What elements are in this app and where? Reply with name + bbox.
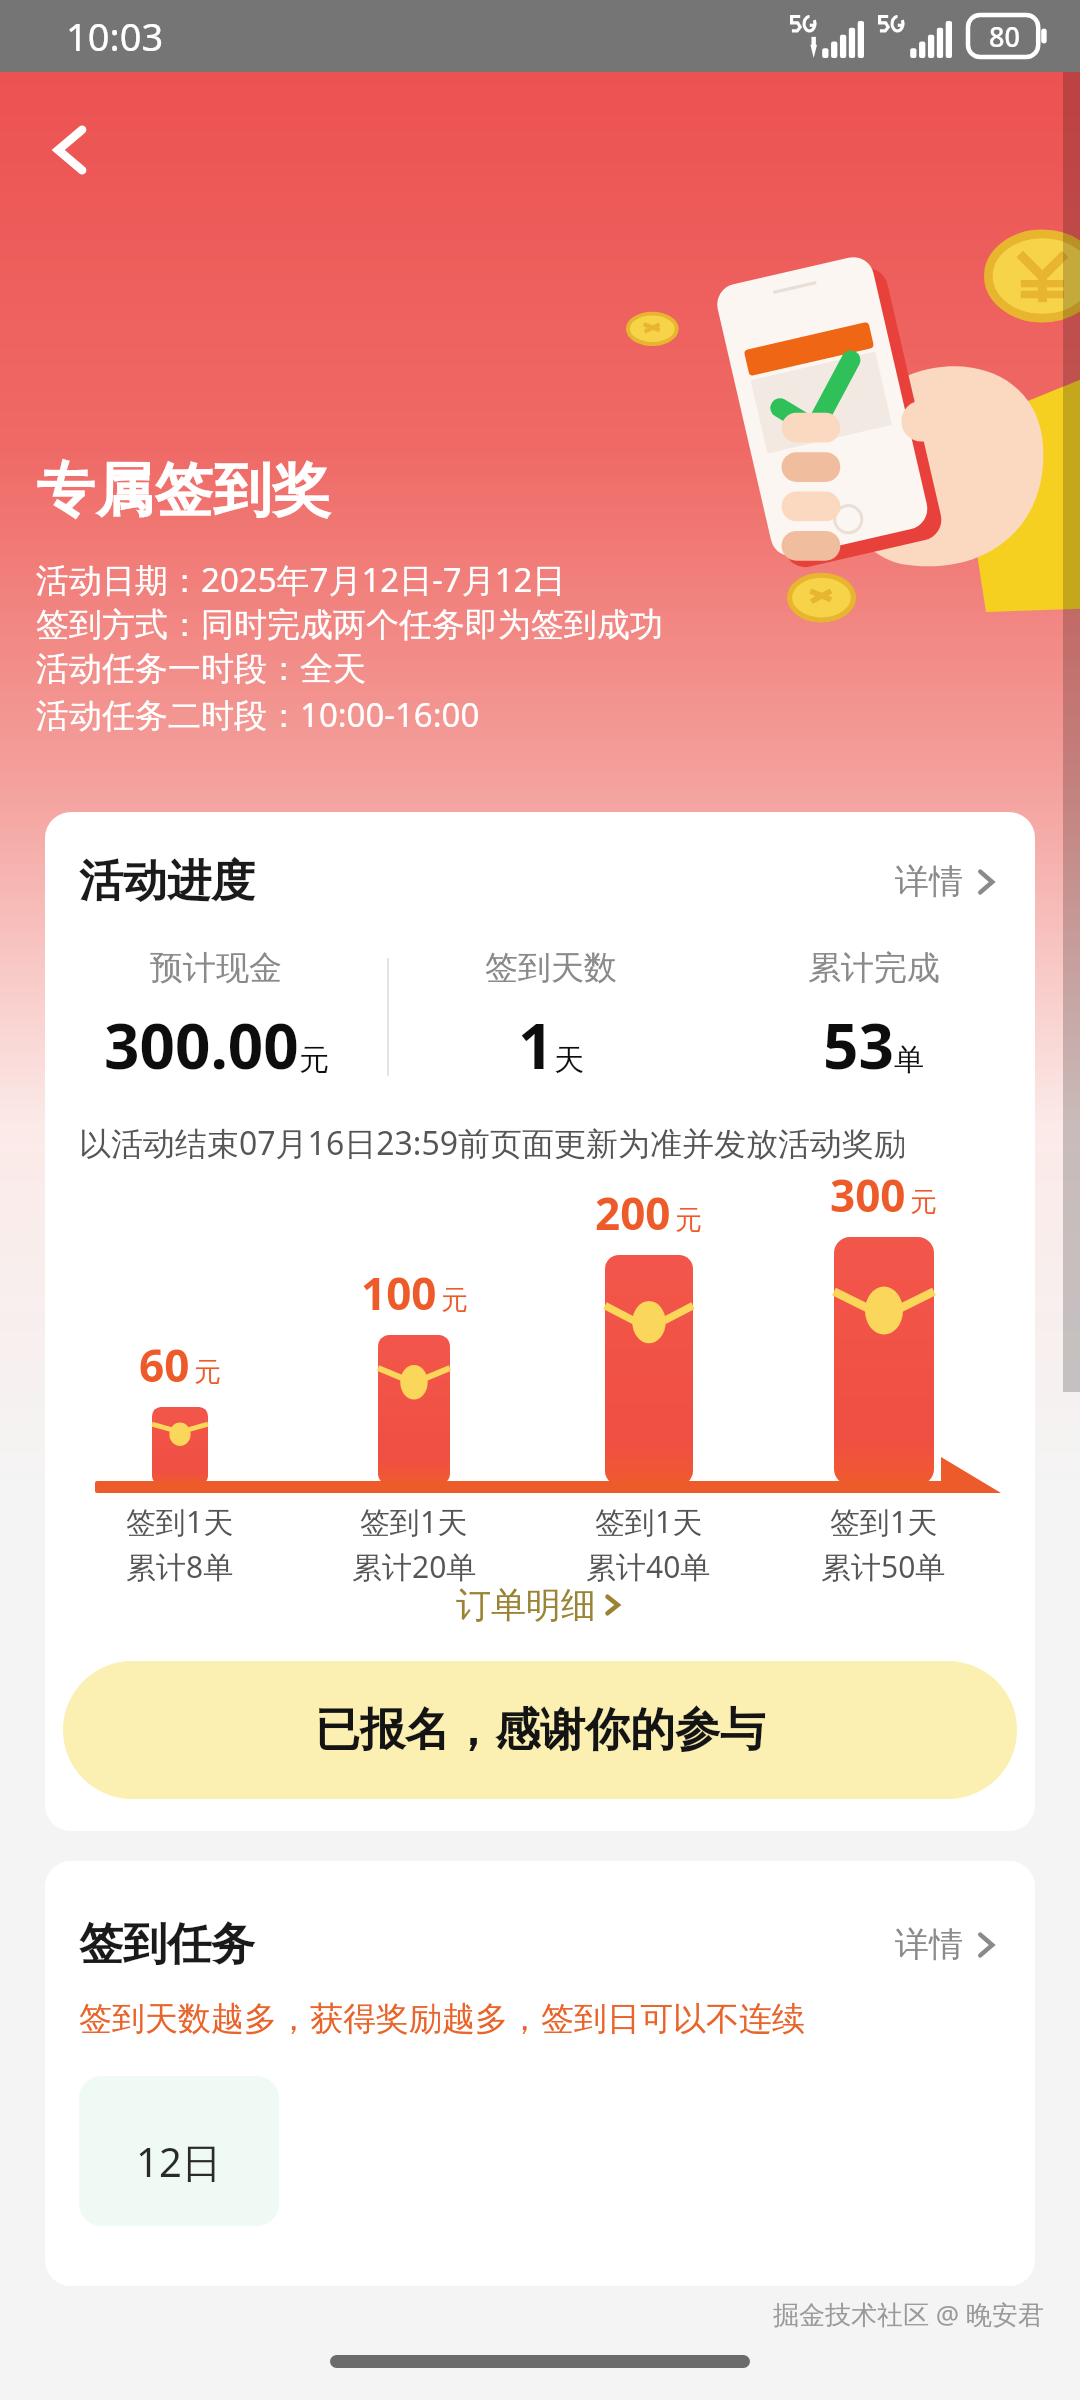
staticText: 签到1天	[830, 1501, 938, 1542]
staticText: 100	[361, 1263, 437, 1323]
staticText: 53	[823, 1003, 894, 1087]
staticText: 掘金技术社区 @ 晚安君	[773, 2296, 1044, 2332]
staticText: 元	[675, 1203, 702, 1237]
staticText: 60	[139, 1335, 190, 1395]
staticText: 元	[299, 1041, 329, 1079]
staticText: 活动任务二时段：10:00-16:00	[36, 692, 480, 737]
staticText: 单	[894, 1041, 924, 1079]
staticText: 300	[830, 1165, 906, 1225]
staticText: 活动日期：2025年7月12日-7月12日	[36, 557, 566, 602]
staticText: 签到1天	[595, 1501, 703, 1542]
staticText: 累计完成	[808, 947, 940, 989]
staticText: 1	[518, 1003, 554, 1087]
staticText: 累计50单	[821, 1546, 946, 1587]
button[interactable]: 详情	[889, 854, 1005, 909]
button[interactable]: 订单明细	[45, 1565, 1035, 1645]
staticText: 元	[441, 1283, 468, 1317]
staticText: 签到天数越多，获得奖励越多，签到日可以不连续	[79, 1998, 805, 2040]
staticText: 200	[595, 1183, 671, 1243]
staticText: 签到1天	[126, 1501, 234, 1542]
staticText: 以活动结束07月16日23:59前页面更新为准并发放活动奖励	[79, 1121, 907, 1165]
button[interactable]: 详情	[889, 1917, 1005, 1972]
button[interactable]: Back	[24, 102, 120, 198]
button[interactable]: 已报名，感谢你的参与	[63, 1661, 1017, 1799]
staticText: 累计40单	[586, 1546, 711, 1587]
staticText: 活动进度	[79, 854, 255, 909]
staticText: 签到方式：同时完成两个任务即为签到成功	[36, 604, 663, 646]
staticText: 签到1天	[360, 1501, 468, 1542]
staticText: 12日	[136, 2134, 222, 2189]
staticText: 10:03	[66, 10, 164, 62]
staticText: 签到天数	[485, 947, 617, 989]
staticText: 300.00	[104, 1003, 299, 1087]
staticText: 80	[989, 18, 1020, 55]
staticText: 专属签到奖	[36, 454, 331, 527]
staticText: 详情	[895, 1923, 963, 1966]
staticText: 订单明细	[456, 1583, 596, 1627]
staticText: 累计8单	[126, 1546, 234, 1587]
staticText: 详情	[895, 860, 963, 903]
staticText: 累计20单	[352, 1546, 477, 1587]
button[interactable]: 12日	[79, 2076, 279, 2226]
staticText: 元	[194, 1355, 221, 1389]
staticText: 元	[910, 1185, 937, 1219]
staticText: 天	[554, 1041, 584, 1079]
staticText: 预计现金	[150, 947, 282, 989]
staticText: 已报名，感谢你的参与	[315, 1702, 765, 1759]
staticText: 活动任务一时段：全天	[36, 648, 366, 690]
staticText: 签到任务	[79, 1917, 255, 1972]
